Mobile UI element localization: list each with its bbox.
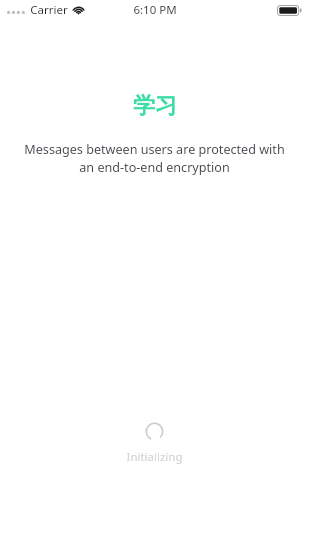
staticText: 6:10 PM	[133, 2, 177, 18]
staticText: Messages between users are protected wit…	[24, 141, 285, 175]
staticText: Initializing	[126, 449, 183, 465]
staticText: 学习	[133, 92, 177, 120]
staticText: Carrier	[30, 2, 68, 18]
other: Loading	[144, 421, 165, 442]
